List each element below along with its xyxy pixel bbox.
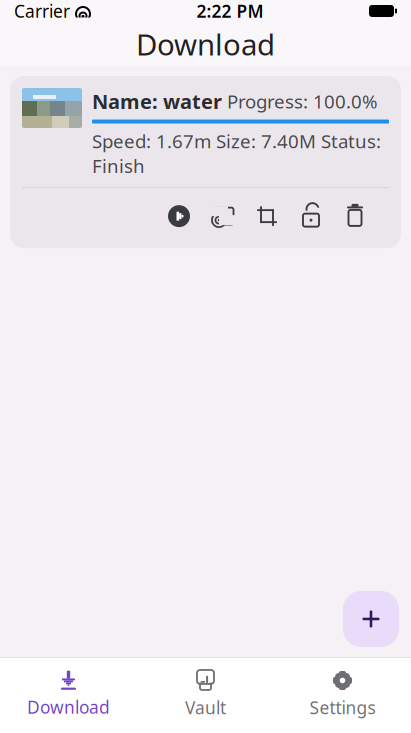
staticText: Name: water xyxy=(92,88,222,115)
button[interactable]: Vault xyxy=(137,662,274,727)
staticText: 2:22 PM xyxy=(196,0,263,22)
button[interactable]: Delete xyxy=(333,196,377,236)
staticText: Progress: 100.0% xyxy=(227,89,378,114)
staticText: Download xyxy=(27,695,110,718)
button[interactable]: Unlock xyxy=(289,196,333,236)
staticText: Settings xyxy=(309,696,375,719)
button[interactable]: Crop xyxy=(245,196,289,236)
staticText: Download xyxy=(136,24,275,63)
button[interactable]: Download xyxy=(0,662,137,726)
button[interactable]: Cast xyxy=(201,196,245,236)
button[interactable]: Settings xyxy=(274,662,411,727)
button[interactable]: Add download xyxy=(343,591,399,647)
staticText: Vault xyxy=(185,696,226,719)
staticText: Speed: 1.67m Size: 7.40M Status: Finish xyxy=(92,129,381,178)
staticText: Carrier xyxy=(14,0,70,22)
button[interactable]: Play xyxy=(157,196,201,236)
